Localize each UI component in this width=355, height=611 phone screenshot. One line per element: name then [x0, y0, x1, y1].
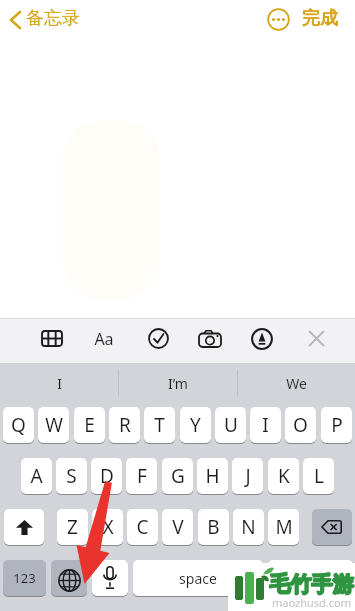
staticText: Y	[190, 412, 201, 438]
button[interactable]: R	[109, 407, 140, 443]
staticText: R	[119, 412, 131, 438]
button[interactable]: B	[198, 509, 229, 545]
staticText: V	[172, 514, 184, 540]
button[interactable]: F	[126, 458, 157, 494]
staticText: F	[137, 463, 147, 489]
button[interactable]: U	[215, 407, 246, 443]
button[interactable]: Y	[180, 407, 211, 443]
staticText: Z	[67, 514, 78, 540]
button[interactable]	[312, 509, 352, 545]
button[interactable]: Z	[57, 509, 88, 545]
staticText: N	[241, 514, 256, 540]
button[interactable]: X	[92, 509, 123, 545]
button[interactable]: A	[21, 458, 52, 494]
button[interactable]: D	[91, 458, 122, 494]
button[interactable]: 完成	[302, 7, 338, 30]
staticText: E	[84, 412, 95, 438]
staticText: T	[154, 412, 165, 438]
staticText: maozhusd.com	[272, 595, 351, 610]
button[interactable]: return	[268, 560, 353, 596]
button[interactable]: V	[162, 509, 193, 545]
button[interactable]: M	[268, 509, 299, 545]
button[interactable]	[92, 560, 128, 596]
button[interactable]	[41, 330, 63, 347]
staticText: return	[290, 569, 332, 588]
button[interactable]: S	[56, 458, 87, 494]
staticText: J	[245, 463, 251, 489]
staticText: S	[66, 463, 77, 489]
button[interactable]: O	[285, 407, 316, 443]
button[interactable]: W	[38, 407, 69, 443]
button[interactable]	[9, 11, 21, 29]
button[interactable]: G	[162, 458, 193, 494]
staticText: L	[314, 463, 324, 489]
staticText: P	[331, 412, 343, 438]
button[interactable]: E	[74, 407, 105, 443]
staticText: B	[207, 514, 220, 540]
staticText: 备忘录	[26, 7, 80, 30]
staticText: 123	[13, 569, 36, 587]
button[interactable]	[51, 560, 87, 596]
button[interactable]	[4, 509, 44, 545]
button[interactable]: 123	[3, 560, 46, 596]
staticText: O	[293, 412, 308, 438]
button[interactable]: L	[303, 458, 334, 494]
staticText: 毛竹手游	[269, 572, 353, 598]
staticText: C	[136, 514, 149, 540]
button[interactable]: P	[321, 407, 352, 443]
staticText: M	[275, 514, 293, 540]
staticText: 完成	[302, 7, 338, 30]
button[interactable]	[148, 328, 169, 349]
button[interactable]: I	[0, 363, 118, 403]
staticText: I	[262, 412, 269, 438]
staticText: G	[171, 463, 185, 489]
button[interactable]: J	[232, 458, 263, 494]
button[interactable]: Q	[3, 407, 34, 443]
staticText: I’m	[168, 374, 188, 393]
button[interactable]: H	[197, 458, 228, 494]
button[interactable]: I	[250, 407, 281, 443]
button[interactable]	[267, 8, 290, 31]
button[interactable]: C	[127, 509, 158, 545]
staticText: H	[205, 463, 220, 489]
button[interactable]: Aa	[94, 328, 114, 350]
button[interactable]: We	[238, 363, 355, 403]
button[interactable]	[198, 330, 222, 348]
staticText: U	[224, 412, 238, 438]
staticText: A	[30, 463, 43, 489]
button[interactable]: T	[144, 407, 175, 443]
staticText: W	[45, 412, 63, 438]
staticText: X	[102, 514, 114, 540]
staticText: space	[179, 569, 217, 588]
staticText: We	[286, 374, 307, 393]
staticText: I	[57, 374, 62, 393]
button[interactable]: I’m	[119, 363, 237, 403]
staticText: D	[100, 463, 114, 489]
staticText: 毛竹手游	[270, 571, 354, 597]
button[interactable]: K	[268, 458, 299, 494]
button[interactable]: N	[233, 509, 264, 545]
button[interactable]: 备忘录	[26, 7, 80, 30]
button[interactable]	[308, 330, 325, 347]
staticText: 毛竹手游	[269, 571, 353, 597]
staticText: Aa	[94, 328, 114, 350]
button[interactable]	[251, 328, 273, 350]
staticText: Q	[11, 412, 26, 438]
button[interactable]: space	[133, 560, 263, 596]
staticText: K	[278, 463, 290, 489]
